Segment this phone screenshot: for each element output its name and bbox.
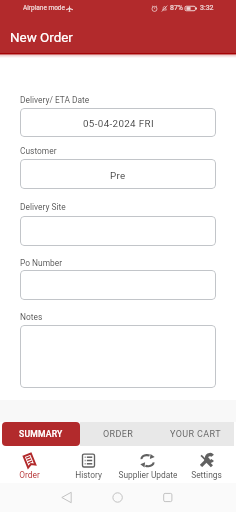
button[interactable]: Order (0, 446, 59, 483)
staticText: Po Number (20, 258, 63, 268)
button[interactable]: ORDER (80, 422, 157, 446)
staticText: YOUR CART (170, 429, 221, 440)
staticText: Notes (20, 312, 43, 322)
staticText: 05-04-2024 FRI (83, 118, 154, 129)
button[interactable]: SUMMARY (2, 422, 80, 446)
button[interactable] (20, 325, 216, 388)
staticText: New Order (10, 30, 73, 46)
button[interactable] (20, 216, 216, 246)
button[interactable]: Pre (20, 159, 216, 189)
button[interactable]: Settings (177, 446, 236, 483)
staticText: Delivery Site (20, 202, 66, 212)
button[interactable]: 05-04-2024 FRI (20, 108, 216, 137)
staticText: Pre (110, 170, 126, 181)
staticText: 3:32 (200, 4, 214, 12)
button[interactable]: History (59, 446, 118, 483)
staticText: ORDER (103, 429, 134, 440)
button[interactable]: Supplier Update (118, 446, 177, 483)
staticText: Supplier Update (118, 470, 177, 480)
button[interactable]: YOUR CART (157, 422, 234, 446)
staticText: Settings (191, 470, 222, 480)
staticText: Airplane mode (23, 4, 65, 12)
staticText: History (75, 470, 102, 480)
staticText: Delivery/ ETA Date (20, 95, 90, 105)
staticText: 87% (170, 4, 183, 12)
staticText: Customer (20, 146, 57, 156)
staticText: Order (19, 470, 40, 480)
staticText: SUMMARY (19, 429, 63, 439)
button[interactable] (20, 270, 216, 300)
